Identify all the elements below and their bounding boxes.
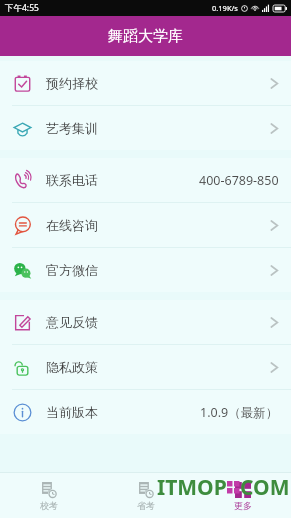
button[interactable]: 艺考集训 [0,106,291,150]
staticText: 1.0.9（最新） [200,404,279,421]
staticText: 400-6789-850 [199,172,279,189]
staticText: 舞蹈大学库 [108,27,183,46]
staticText: 0.19K/s [212,3,238,13]
staticText: 在线咨询 [46,217,98,233]
staticText: 当前版本 [46,404,98,420]
button[interactable]: 省考 [97,473,194,518]
button[interactable]: 联系电话 [0,158,291,202]
staticText: 隐私政策 [46,359,98,375]
button[interactable]: 预约择校 [0,61,291,105]
button[interactable]: 隐私政策 [0,345,291,389]
button[interactable]: 当前版本 [0,390,291,434]
staticText: 校考 [40,500,58,511]
staticText: 预约择校 [46,75,98,91]
staticText: 意见反馈 [46,314,98,330]
staticText: 联系电话 [46,172,98,188]
button[interactable]: 校考 [0,473,97,518]
staticText: 下午4:55 [5,2,39,14]
staticText: COM [240,473,290,502]
button[interactable]: 意见反馈 [0,300,291,344]
staticText: ITMOP [157,473,227,502]
staticText: 更多 [234,500,252,511]
staticText: 官方微信 [46,262,98,278]
button[interactable]: 在线咨询 [0,203,291,247]
button[interactable]: 更多 [194,473,291,518]
button[interactable]: 官方微信 [0,248,291,292]
staticText: 省考 [137,500,155,511]
staticText: 艺考集训 [46,120,98,136]
